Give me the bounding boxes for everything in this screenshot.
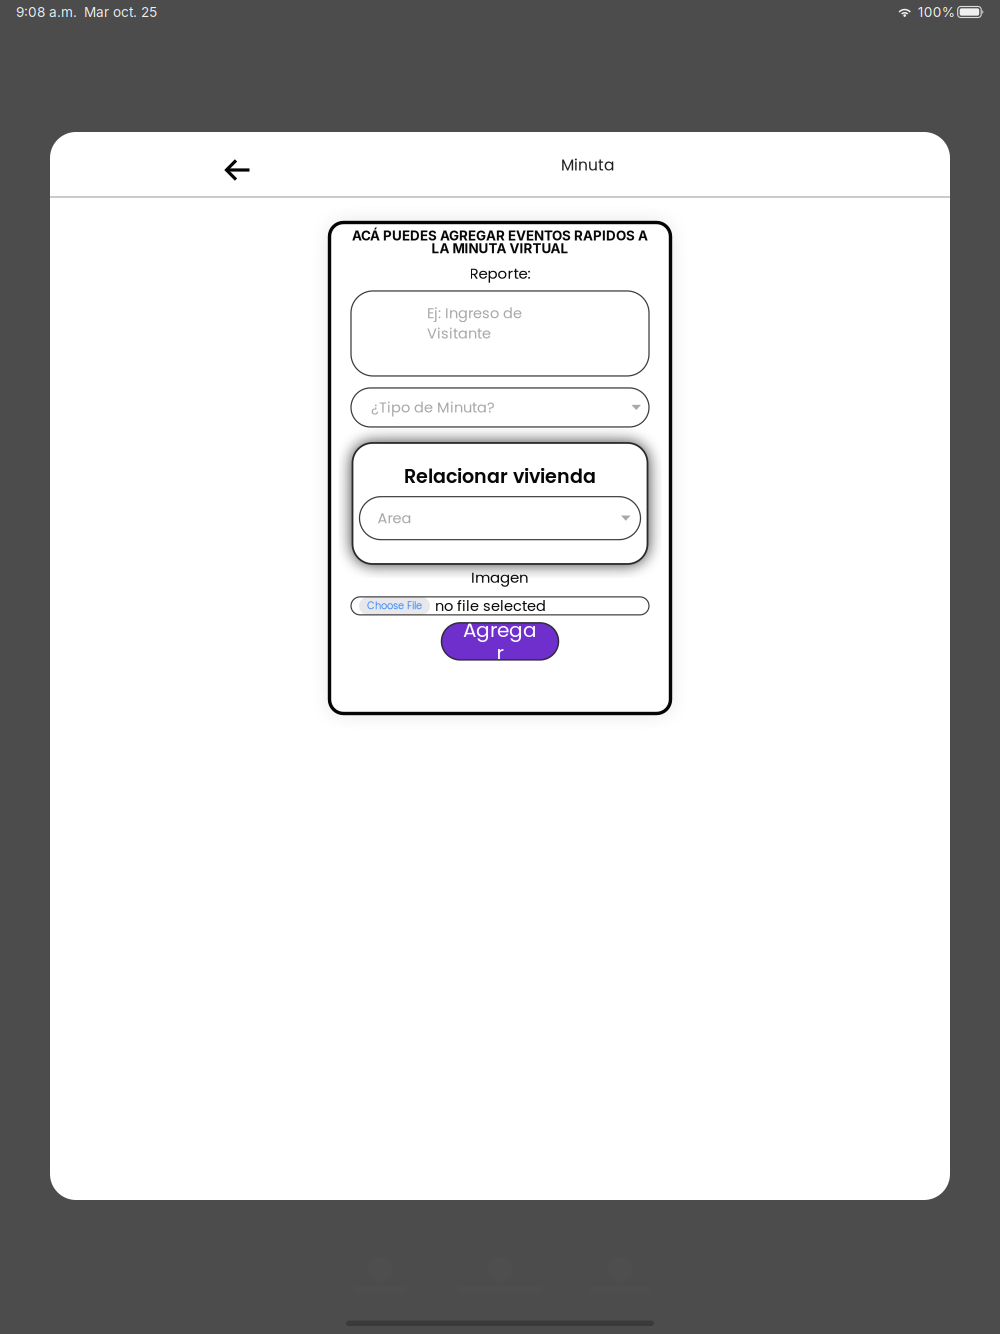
button[interactable]: Choose File	[359, 597, 430, 615]
staticText: Minuta	[561, 154, 614, 176]
staticText: r	[496, 639, 503, 667]
staticText: 9:08 a.m.	[16, 4, 77, 20]
button[interactable]: Agrega	[441, 623, 558, 660]
staticText: Choose File	[367, 599, 422, 613]
staticText: Relacionar vivienda	[404, 463, 596, 490]
button[interactable]: Area	[359, 497, 640, 540]
staticText: Mar oct. 25	[84, 4, 157, 20]
staticText: no file selected	[435, 596, 546, 616]
button[interactable]: Back	[215, 148, 261, 192]
staticText: 100%	[918, 4, 955, 20]
staticText: ¿Tipo de Minuta?	[371, 397, 495, 418]
staticText: Reporte:	[469, 263, 530, 284]
staticText: Agrega	[463, 616, 537, 644]
staticText: LA MINUTA VIRTUAL	[431, 240, 568, 256]
staticText: ACÁ PUEDES AGREGAR EVENTOS RAPIDOS A	[352, 227, 648, 244]
staticText: Area	[377, 508, 411, 528]
staticText: Imagen	[471, 567, 529, 588]
staticText: Ej: Ingreso de Visitante	[427, 303, 522, 344]
button[interactable]: ¿Tipo de Minuta?	[351, 388, 649, 427]
